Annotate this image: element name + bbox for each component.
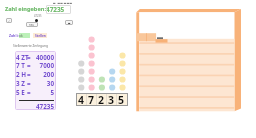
button[interactable]: Check [6,18,12,23]
staticText: 7 [88,93,95,106]
staticText: Stellenwerte Zerlegung [13,44,48,48]
staticText: 47235 [29,102,54,110]
button[interactable]: Arbeitsblatt [0,0,256,138]
staticText: ▬ [68,21,71,24]
staticText: 7000 [29,61,54,70]
button[interactable]: ok [19,33,30,38]
staticText: = [27,88,31,97]
staticText: = [27,53,31,62]
button[interactable]: Stellen [33,33,47,38]
staticText: 47235 [46,5,65,14]
staticText: 200 [29,70,54,79]
button[interactable]: 47235 [46,5,71,14]
staticText: = [27,79,31,88]
staticText: 5 [29,88,54,97]
button[interactable]: Neu [26,22,38,27]
staticText: 4 [78,93,85,106]
staticText: Stellen [35,34,46,38]
staticText: Zahl ist [9,33,22,38]
staticText: 3 [108,93,115,106]
button[interactable]: 4 [76,93,128,106]
staticText: 5 E [16,88,25,97]
button[interactable]: Optionen [65,20,73,25]
staticText: Zahl eingeben: [5,5,46,13]
staticText: = [27,61,31,70]
staticText: ok [19,34,23,38]
button[interactable]: 4 ZT [15,51,56,110]
staticText: 47235 [34,14,42,18]
staticText: neu [29,23,35,27]
staticText: ✓ [8,19,11,22]
staticText: 2 H [16,70,27,79]
staticText: 3 Z [16,79,25,88]
staticText: = [27,70,31,79]
staticText: 7 T [16,61,25,70]
staticText: 2 [98,93,105,106]
staticText: ▬ ▬▬ ▬▬▬ [53,1,73,5]
staticText: 4 ZT [16,53,29,62]
staticText: 5 [118,93,125,106]
staticText: 40000 [29,53,54,62]
staticText: 30 [29,79,54,88]
